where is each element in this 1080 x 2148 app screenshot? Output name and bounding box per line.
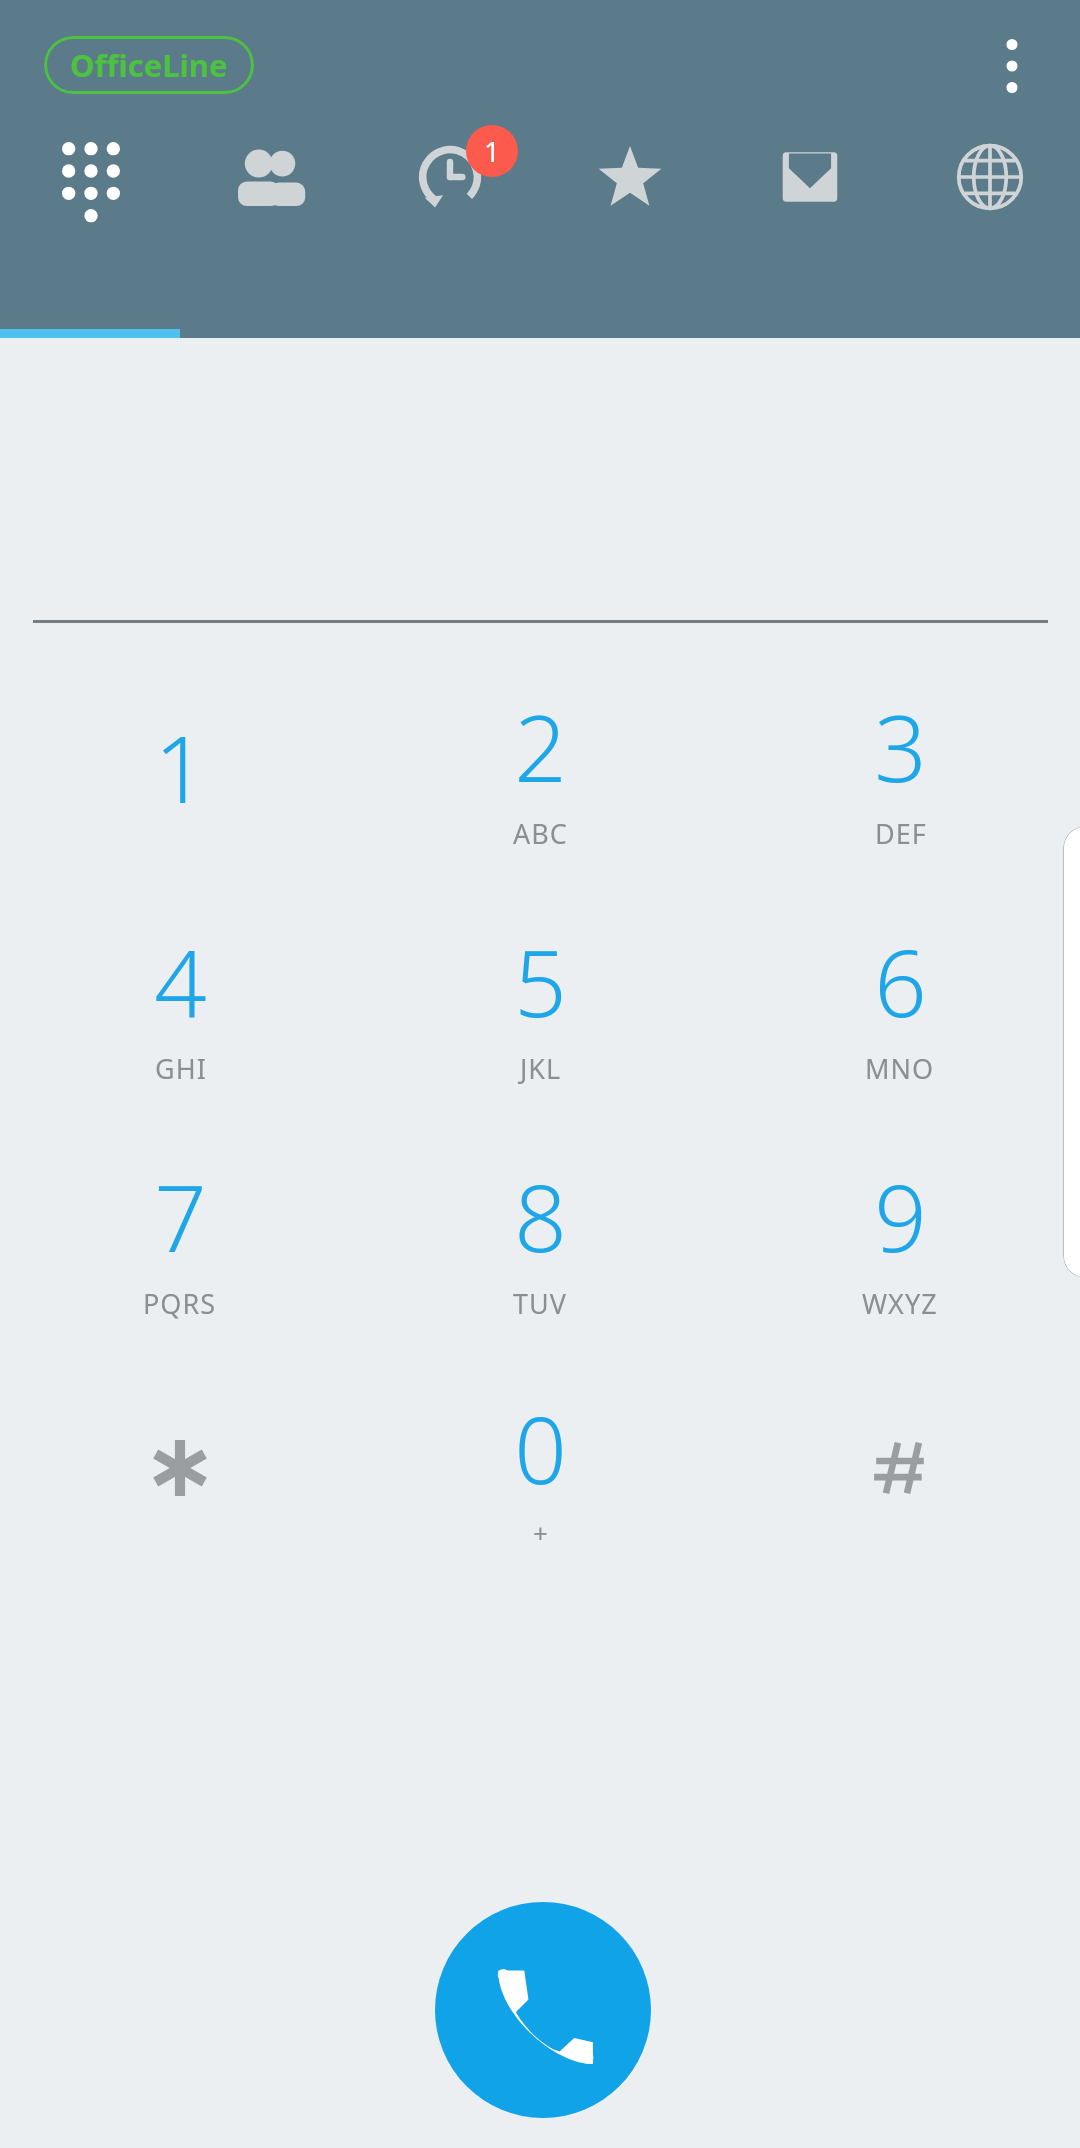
button[interactable]: 6 bbox=[750, 895, 1050, 1110]
button[interactable]: 7 bbox=[30, 1130, 330, 1345]
button[interactable]: 8 bbox=[390, 1130, 690, 1345]
staticText: 1 bbox=[154, 705, 207, 830]
button[interactable] bbox=[30, 1360, 330, 1575]
button[interactable]: Contacts bbox=[180, 112, 360, 242]
button[interactable]: 1 bbox=[30, 660, 330, 875]
staticText: ABC bbox=[513, 815, 568, 852]
staticText: PQRS bbox=[143, 1285, 217, 1322]
button[interactable] bbox=[750, 1360, 1050, 1575]
staticText: + bbox=[533, 1515, 549, 1550]
button[interactable]: Call bbox=[435, 1902, 651, 2118]
button[interactable]: Favorites bbox=[540, 112, 720, 242]
staticText: TUV bbox=[513, 1285, 567, 1322]
staticText: 5 bbox=[514, 919, 567, 1044]
staticText: 9 bbox=[874, 1154, 927, 1279]
staticText: 7 bbox=[154, 1154, 207, 1279]
staticText: WXYZ bbox=[862, 1285, 938, 1322]
button[interactable]: Recents bbox=[360, 112, 540, 242]
button[interactable]: Web bbox=[900, 112, 1080, 242]
staticText: GHI bbox=[155, 1050, 207, 1087]
button[interactable]: OfficeLine bbox=[44, 36, 254, 94]
button[interactable]: Dial pad bbox=[0, 112, 180, 242]
staticText: 3 bbox=[874, 684, 927, 809]
button[interactable]: 4 bbox=[30, 895, 330, 1110]
staticText: MNO bbox=[865, 1050, 935, 1087]
staticText: DEF bbox=[875, 815, 927, 852]
staticText: 8 bbox=[514, 1154, 567, 1279]
staticText: 4 bbox=[154, 919, 207, 1044]
staticText: OfficeLine bbox=[70, 44, 228, 86]
button[interactable]: 2 bbox=[390, 660, 690, 875]
staticText: 1 bbox=[484, 132, 501, 170]
button[interactable]: 9 bbox=[750, 1130, 1050, 1345]
staticText: 6 bbox=[874, 919, 927, 1044]
staticText: 0 bbox=[514, 1386, 567, 1511]
staticText: 2 bbox=[514, 684, 567, 809]
button[interactable]: 5 bbox=[390, 895, 690, 1110]
button[interactable]: 0 bbox=[390, 1360, 690, 1575]
button[interactable]: 3 bbox=[750, 660, 1050, 875]
staticText: JKL bbox=[520, 1050, 562, 1087]
button[interactable]: Voicemail bbox=[720, 112, 900, 242]
button[interactable]: More options bbox=[964, 18, 1060, 114]
